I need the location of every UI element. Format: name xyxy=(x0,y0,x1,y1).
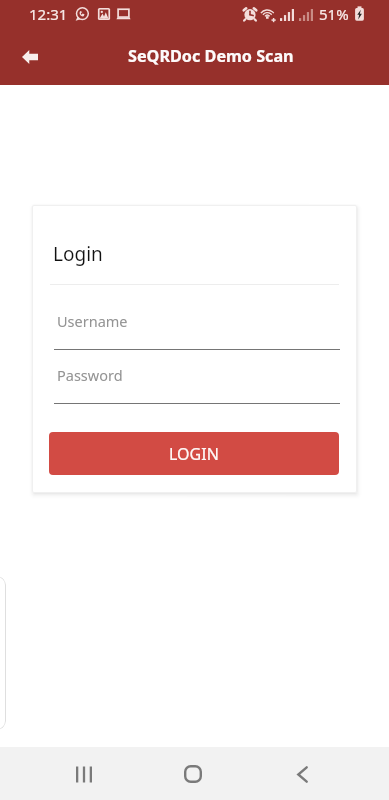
button[interactable]: Back xyxy=(278,750,326,798)
button[interactable]: Back xyxy=(10,37,50,77)
staticText: Username xyxy=(57,311,128,331)
button[interactable]: Recents xyxy=(60,750,108,798)
staticText: Login xyxy=(53,241,103,267)
staticText: 12:31 xyxy=(29,4,68,24)
staticText: LOGIN xyxy=(169,443,219,465)
button[interactable]: Home xyxy=(169,750,217,798)
staticText: Password xyxy=(57,365,123,385)
staticText: 51% xyxy=(319,4,349,24)
button[interactable]: LOGIN xyxy=(49,432,339,475)
staticText: SeQRDoc Demo Scan xyxy=(128,45,294,67)
